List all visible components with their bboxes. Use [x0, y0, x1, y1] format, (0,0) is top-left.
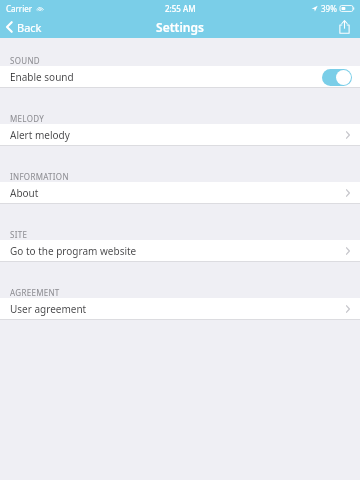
staticText: MELODY: [10, 113, 45, 124]
staticText: INFORMATION: [10, 171, 69, 182]
staticText: Go to the program website: [10, 244, 137, 258]
button[interactable]: Share: [329, 16, 360, 38]
button[interactable]: Go to the program website: [0, 240, 360, 262]
button[interactable]: Alert melody: [0, 124, 360, 146]
staticText: Carrier: [6, 3, 33, 14]
staticText: Settings: [156, 19, 204, 35]
staticText: 39%: [321, 3, 337, 14]
staticText: SITE: [10, 229, 28, 240]
button[interactable]: About: [0, 182, 360, 204]
button[interactable]: Back: [0, 16, 50, 38]
staticText: User agreement: [10, 302, 87, 316]
staticText: Alert melody: [10, 128, 70, 142]
staticText: 2:55 AM: [165, 3, 196, 14]
staticText: SOUND: [10, 55, 40, 66]
button[interactable]: Enable sound: [0, 66, 360, 88]
button[interactable]: Enable sound toggle: [322, 69, 352, 86]
staticText: About: [10, 186, 39, 200]
staticText: AGREEMENT: [10, 287, 60, 298]
staticText: Back: [17, 20, 42, 35]
button[interactable]: User agreement: [0, 298, 360, 320]
staticText: Enable sound: [10, 70, 74, 84]
